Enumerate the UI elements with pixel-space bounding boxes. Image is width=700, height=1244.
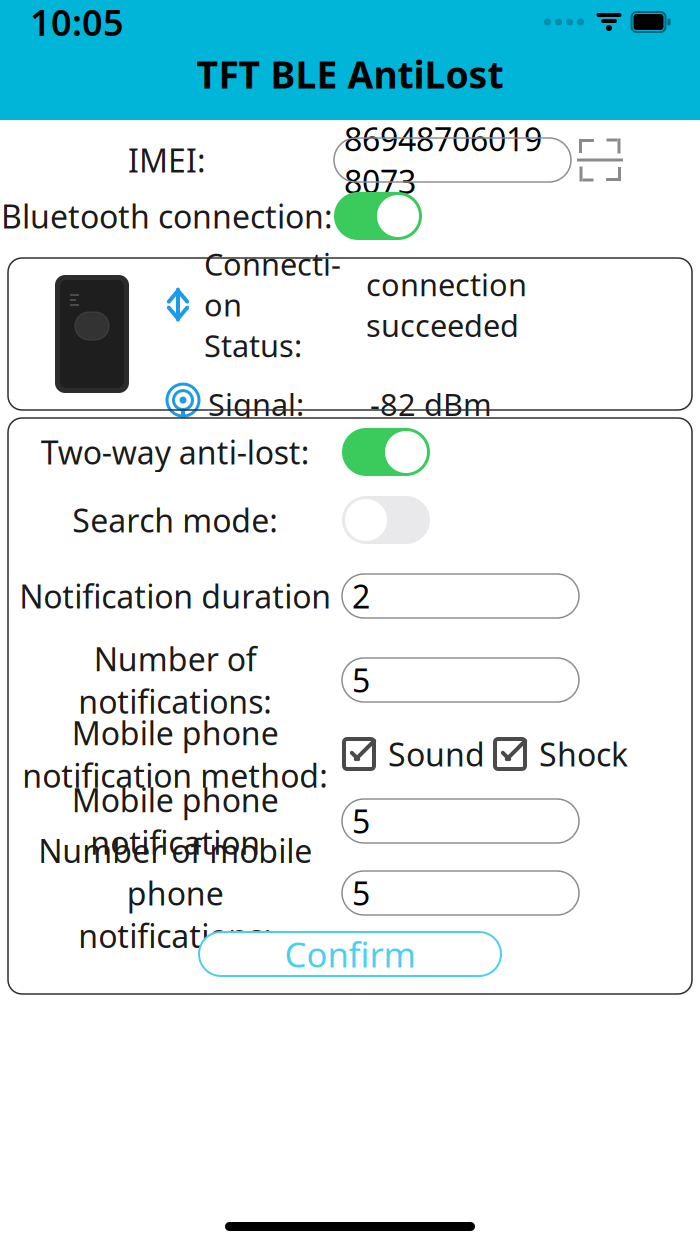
- staticText: Sound: [388, 733, 485, 775]
- staticText: Bluetooth connection:: [1, 195, 333, 237]
- staticText: connection succeeded: [366, 264, 527, 345]
- staticText: 5: [352, 872, 370, 914]
- button[interactable]: Shock: [493, 733, 628, 775]
- staticText: 5: [352, 659, 370, 701]
- button[interactable]: Off: [342, 496, 430, 544]
- button[interactable]: On: [334, 192, 422, 240]
- staticText: TFT BLE AntiLost: [196, 49, 503, 99]
- staticText: -82 dBm: [370, 384, 492, 424]
- staticText: 2: [352, 575, 370, 617]
- button[interactable]: Sound: [342, 733, 485, 775]
- staticText: Notification duration: [19, 575, 331, 617]
- button[interactable]: 5: [342, 871, 579, 915]
- staticText: Signal:: [208, 384, 304, 424]
- staticText: Two-way anti-lost:: [40, 431, 309, 473]
- staticText: Shock: [539, 733, 628, 775]
- staticText: 5: [352, 800, 370, 842]
- button[interactable]: Confirm: [199, 932, 501, 976]
- staticText: Search mode:: [72, 499, 278, 541]
- button[interactable]: 5: [342, 799, 579, 843]
- staticText: Number of notifications:: [78, 637, 272, 722]
- button[interactable]: 5: [342, 658, 579, 702]
- button[interactable]: 869487060198073: [334, 138, 571, 182]
- staticText: Confirm: [284, 931, 415, 977]
- staticText: Mobile phone notification method:: [22, 711, 328, 796]
- staticText: Number of mobile phone notifications:: [38, 829, 312, 957]
- button[interactable]: 2: [342, 574, 579, 618]
- button[interactable]: On: [342, 428, 430, 476]
- staticText: Connection Status:: [204, 244, 341, 366]
- staticText: IMEI:: [128, 139, 206, 181]
- staticText: 10:05: [30, 0, 124, 46]
- staticText: Mobile phone notification: [71, 778, 278, 863]
- staticText: 869487060198073: [344, 117, 542, 202]
- button[interactable]: Scan barcode: [571, 132, 629, 188]
